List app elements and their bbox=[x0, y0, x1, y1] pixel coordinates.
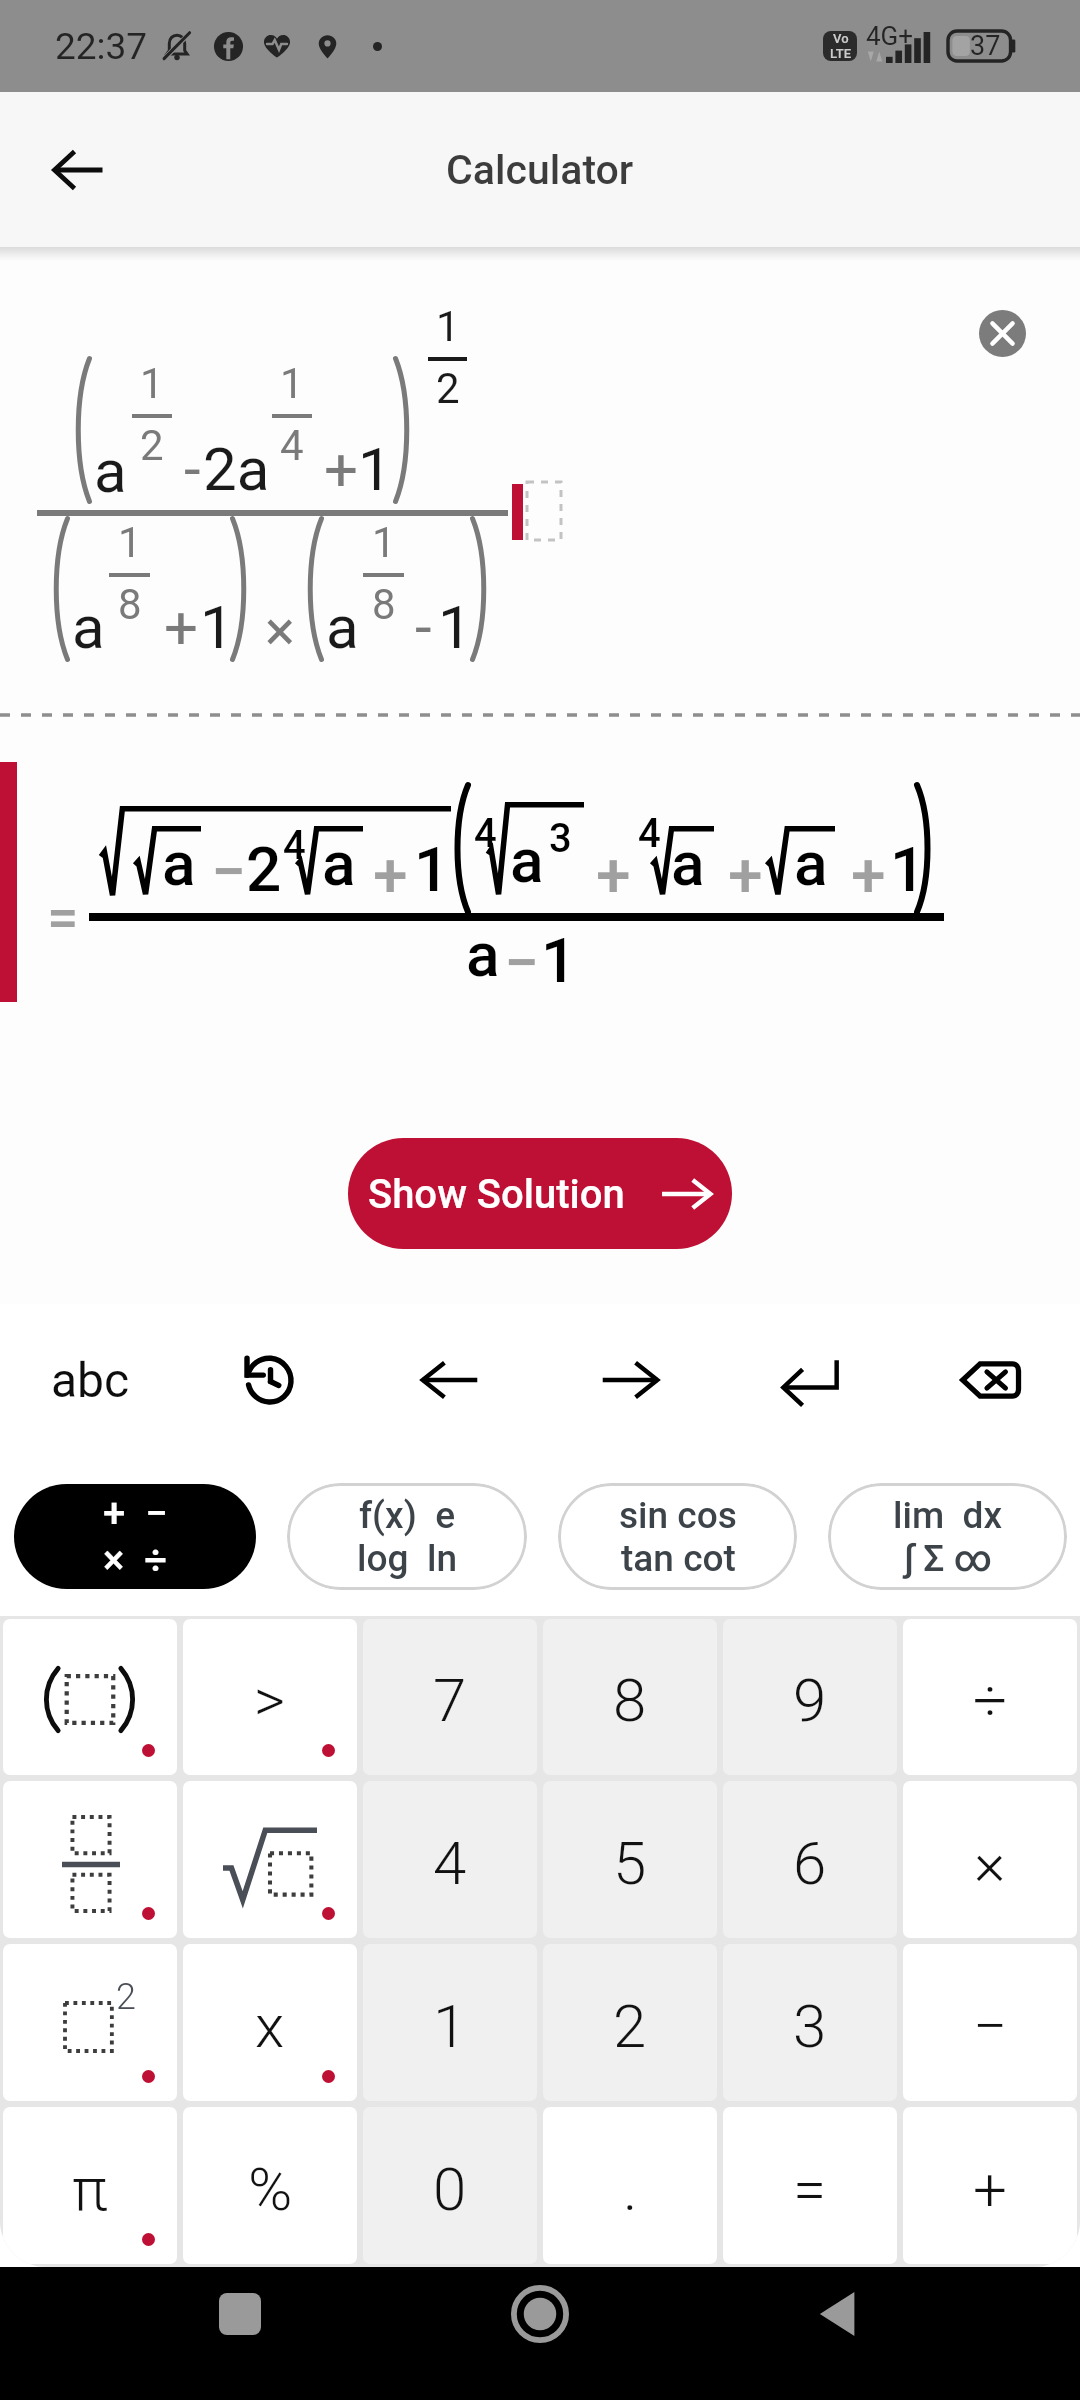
staticText: 2 bbox=[246, 833, 282, 906]
staticText: 2 bbox=[116, 1976, 136, 2018]
staticText: lim dx bbox=[893, 1494, 1003, 1537]
staticText: − bbox=[504, 926, 539, 999]
staticText: 4 bbox=[283, 822, 306, 869]
staticText: 1 bbox=[140, 359, 164, 408]
button[interactable]: Back bbox=[30, 122, 126, 218]
staticText: x bbox=[255, 1991, 285, 2061]
staticText: > bbox=[254, 1665, 286, 1735]
staticText: f(x) e bbox=[359, 1494, 456, 1537]
button[interactable]: abc bbox=[0, 1304, 180, 1456]
button[interactable]: > bbox=[183, 1619, 357, 1775]
staticText: × ÷ bbox=[103, 1537, 168, 1584]
staticText: ∫ Σ ∞ bbox=[904, 1537, 992, 1580]
staticText: 1 bbox=[436, 302, 460, 351]
button[interactable]: Recent apps bbox=[180, 2274, 300, 2394]
button[interactable]: 2 bbox=[3, 1944, 177, 2101]
staticText: 1 bbox=[372, 518, 396, 567]
button[interactable]: lim dx bbox=[828, 1483, 1067, 1590]
button[interactable]: 1 bbox=[363, 1944, 537, 2101]
staticText: a bbox=[322, 827, 356, 900]
staticText: 8 bbox=[613, 1665, 647, 1735]
staticText: 1 bbox=[280, 359, 304, 408]
button[interactable]: 4 bbox=[363, 1781, 537, 1938]
staticText: 2 bbox=[613, 1991, 647, 2061]
staticText: ÷ bbox=[973, 1665, 1008, 1735]
button[interactable]: × bbox=[903, 1781, 1077, 1938]
staticText: + bbox=[728, 838, 763, 911]
button[interactable]: f(x) e bbox=[287, 1483, 527, 1590]
staticText: sin cos bbox=[619, 1494, 737, 1537]
button[interactable]: sin cos bbox=[558, 1483, 797, 1590]
button[interactable]: − bbox=[903, 1944, 1077, 2101]
staticText: × bbox=[265, 598, 295, 664]
staticText: a bbox=[162, 827, 196, 900]
staticText: a bbox=[671, 827, 705, 900]
staticText: 37 bbox=[970, 30, 1001, 62]
staticText: + bbox=[373, 838, 408, 911]
staticText: = bbox=[47, 885, 79, 951]
staticText: + − bbox=[103, 1490, 168, 1537]
staticText: a bbox=[794, 827, 828, 900]
staticText: 4G+ bbox=[866, 21, 914, 51]
button[interactable]: Back bbox=[780, 2274, 900, 2394]
button[interactable] bbox=[183, 1781, 357, 1938]
button[interactable]: Home bbox=[480, 2274, 600, 2394]
button[interactable]: Move left bbox=[360, 1304, 540, 1456]
button[interactable]: % bbox=[183, 2107, 357, 2264]
staticText: 4 bbox=[638, 810, 661, 857]
staticText: 6 bbox=[793, 1828, 827, 1898]
staticText: × bbox=[974, 1828, 1006, 1898]
button[interactable]: x bbox=[183, 1944, 357, 2101]
staticText: a bbox=[326, 592, 359, 662]
button[interactable]: 6 bbox=[723, 1781, 897, 1938]
button[interactable]: Move right bbox=[540, 1304, 720, 1456]
staticText: 1 bbox=[890, 833, 926, 906]
staticText: 4 bbox=[280, 421, 304, 470]
button[interactable]: Backspace bbox=[900, 1304, 1080, 1456]
button[interactable]: + bbox=[903, 2107, 1077, 2264]
staticText: Vo bbox=[833, 31, 849, 46]
button[interactable]: Clear bbox=[958, 289, 1046, 377]
button[interactable] bbox=[3, 1619, 177, 1775]
staticText: 4 bbox=[433, 1828, 467, 1898]
button[interactable]: 7 bbox=[363, 1619, 537, 1775]
staticText: 1 bbox=[358, 434, 392, 504]
staticText: 1 bbox=[541, 924, 577, 997]
staticText: + bbox=[164, 592, 199, 662]
button[interactable]: 3 bbox=[723, 1944, 897, 2101]
button[interactable]: 9 bbox=[723, 1619, 897, 1775]
button[interactable]: Enter bbox=[720, 1304, 900, 1456]
button[interactable]: . bbox=[543, 2107, 717, 2264]
staticText: tan cot bbox=[621, 1537, 736, 1580]
staticText: 1 bbox=[118, 518, 142, 567]
staticText: π bbox=[72, 2154, 108, 2224]
staticText: Calculator bbox=[446, 146, 634, 194]
button[interactable]: ÷ bbox=[903, 1619, 1077, 1775]
staticText: - bbox=[184, 434, 201, 504]
button[interactable]: 5 bbox=[543, 1781, 717, 1938]
button[interactable]: = bbox=[723, 2107, 897, 2264]
staticText: Show Solution bbox=[368, 1171, 625, 1218]
staticText: + bbox=[596, 838, 631, 911]
button[interactable]: π bbox=[3, 2107, 177, 2264]
button[interactable]: Show Solution bbox=[348, 1138, 732, 1249]
button[interactable]: 8 bbox=[543, 1619, 717, 1775]
staticText: − bbox=[211, 835, 246, 908]
button[interactable]: + − bbox=[14, 1484, 256, 1589]
button[interactable]: 2 bbox=[543, 1944, 717, 2101]
staticText: 8 bbox=[118, 580, 142, 629]
staticText: + bbox=[324, 434, 359, 504]
staticText: LTE bbox=[830, 46, 851, 61]
staticText: 1 bbox=[433, 1991, 467, 2061]
button[interactable] bbox=[3, 1781, 177, 1938]
staticText: 4 bbox=[474, 810, 497, 857]
button[interactable]: 0 bbox=[363, 2107, 537, 2264]
staticText: = bbox=[793, 2154, 827, 2224]
staticText: 1 bbox=[438, 592, 472, 662]
staticText: 8 bbox=[372, 580, 396, 629]
staticText: + bbox=[851, 838, 886, 911]
staticText: 5 bbox=[613, 1828, 647, 1898]
staticText: + bbox=[973, 2154, 1007, 2224]
button[interactable]: History bbox=[180, 1304, 360, 1456]
staticText: 2 bbox=[140, 421, 164, 470]
